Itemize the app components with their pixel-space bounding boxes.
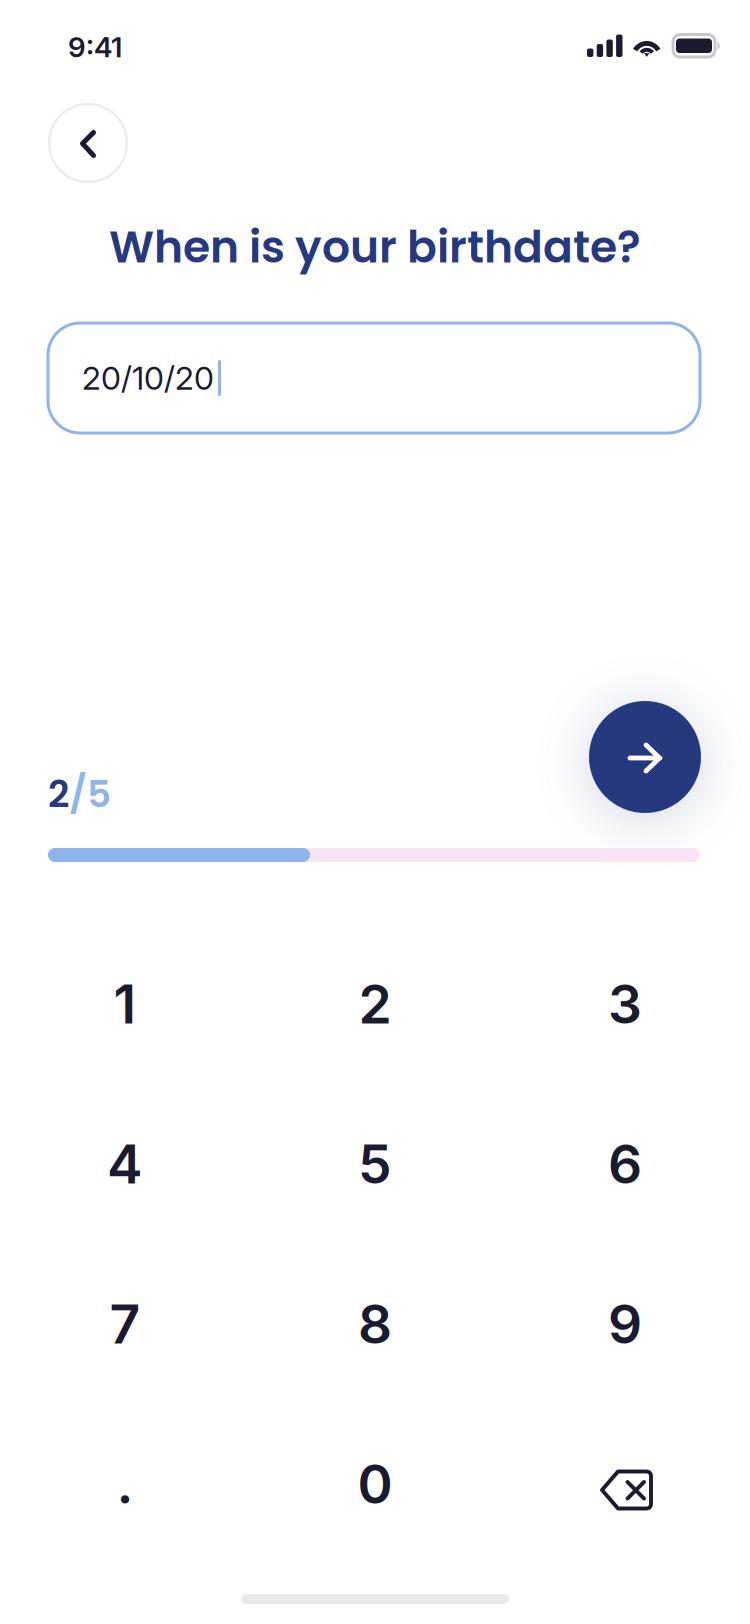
- staticText: 8: [358, 1292, 392, 1356]
- staticText: /5: [69, 768, 111, 820]
- button[interactable]: 0: [250, 1404, 500, 1564]
- staticText: 20/10/20: [82, 359, 214, 397]
- button[interactable]: 1: [0, 924, 250, 1084]
- staticText: 0: [357, 1452, 392, 1516]
- staticText: 6: [608, 1132, 642, 1196]
- staticText: 9: [608, 1292, 642, 1356]
- button[interactable]: 5: [250, 1084, 500, 1244]
- button[interactable]: Delete: [500, 1404, 750, 1564]
- button[interactable]: 2: [250, 924, 500, 1084]
- button[interactable]: Back: [49, 104, 127, 182]
- button[interactable]: 8: [250, 1244, 500, 1404]
- button[interactable]: 6: [500, 1084, 750, 1244]
- staticText: When is your birthdate?: [109, 216, 641, 278]
- button[interactable]: 9: [500, 1244, 750, 1404]
- staticText: 2: [48, 768, 69, 820]
- staticText: 1: [113, 972, 136, 1036]
- staticText: 7: [109, 1292, 140, 1356]
- staticText: 3: [608, 972, 642, 1036]
- button[interactable]: Next: [589, 701, 701, 813]
- staticText: 9:41: [68, 30, 122, 64]
- button[interactable]: 7: [0, 1244, 250, 1404]
- staticText: .: [116, 1452, 133, 1516]
- button[interactable]: .: [0, 1404, 250, 1564]
- button[interactable]: 4: [0, 1084, 250, 1244]
- staticText: 4: [107, 1132, 143, 1196]
- staticText: 5: [358, 1132, 392, 1196]
- staticText: 2: [358, 972, 391, 1036]
- button[interactable]: 3: [500, 924, 750, 1084]
